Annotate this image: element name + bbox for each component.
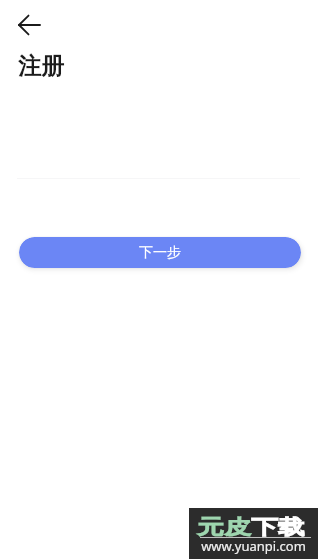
staticText: 元皮 [197,515,251,540]
staticText: www.yuanpi.com [189,537,318,555]
button[interactable]: Back [10,6,48,44]
button[interactable]: 下一步 [19,237,301,268]
staticText: 注册 [18,52,64,81]
staticText: 下载 [251,515,305,540]
staticText: 下一步 [139,244,181,262]
